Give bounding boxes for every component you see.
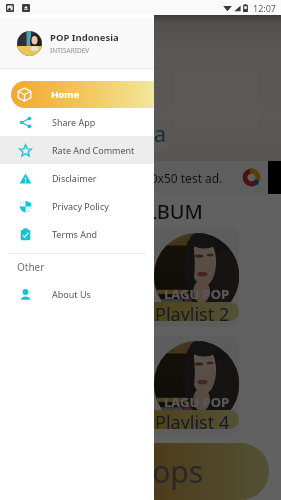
staticText: 320x50 test ad. (137, 170, 223, 186)
button[interactable]: LAGU POP (108, 227, 239, 327)
staticText: 12:07 (253, 2, 277, 14)
button[interactable]: Terms And (0, 220, 154, 248)
staticText: Terms And (52, 228, 98, 240)
staticText: Privacy Policy (52, 200, 109, 212)
staticText: LAGU POP (164, 285, 230, 301)
staticText: Playlist 4 (155, 410, 230, 429)
staticText: ALBUM (133, 198, 203, 225)
staticText: Share App (52, 116, 96, 128)
staticText: Playlist 2 (155, 302, 230, 321)
staticText: INTISARIDEV (50, 46, 90, 55)
button[interactable]: Rate And Comment (0, 136, 154, 164)
staticText: POP Indonesia (14, 118, 166, 148)
staticText: LAGU POP (164, 393, 230, 409)
staticText: POP Indonesia (50, 31, 119, 44)
button[interactable]: Home (11, 81, 154, 108)
staticText: Other (17, 260, 45, 274)
staticText: About Us (52, 288, 91, 300)
button[interactable]: Share App (0, 108, 154, 136)
button[interactable]: About Us (0, 280, 154, 308)
staticText: Pops (134, 451, 204, 492)
button[interactable]: Disclaimer (0, 164, 154, 192)
button[interactable]: LAGU POP (108, 335, 239, 435)
button[interactable]: Pops (128, 443, 269, 500)
button[interactable]: Privacy Policy (0, 192, 154, 220)
staticText: Rate And Comment (52, 144, 135, 156)
staticText: Home (51, 88, 80, 101)
staticText: Disclaimer (52, 172, 97, 184)
button[interactable]: POP Indonesia (0, 18, 154, 68)
